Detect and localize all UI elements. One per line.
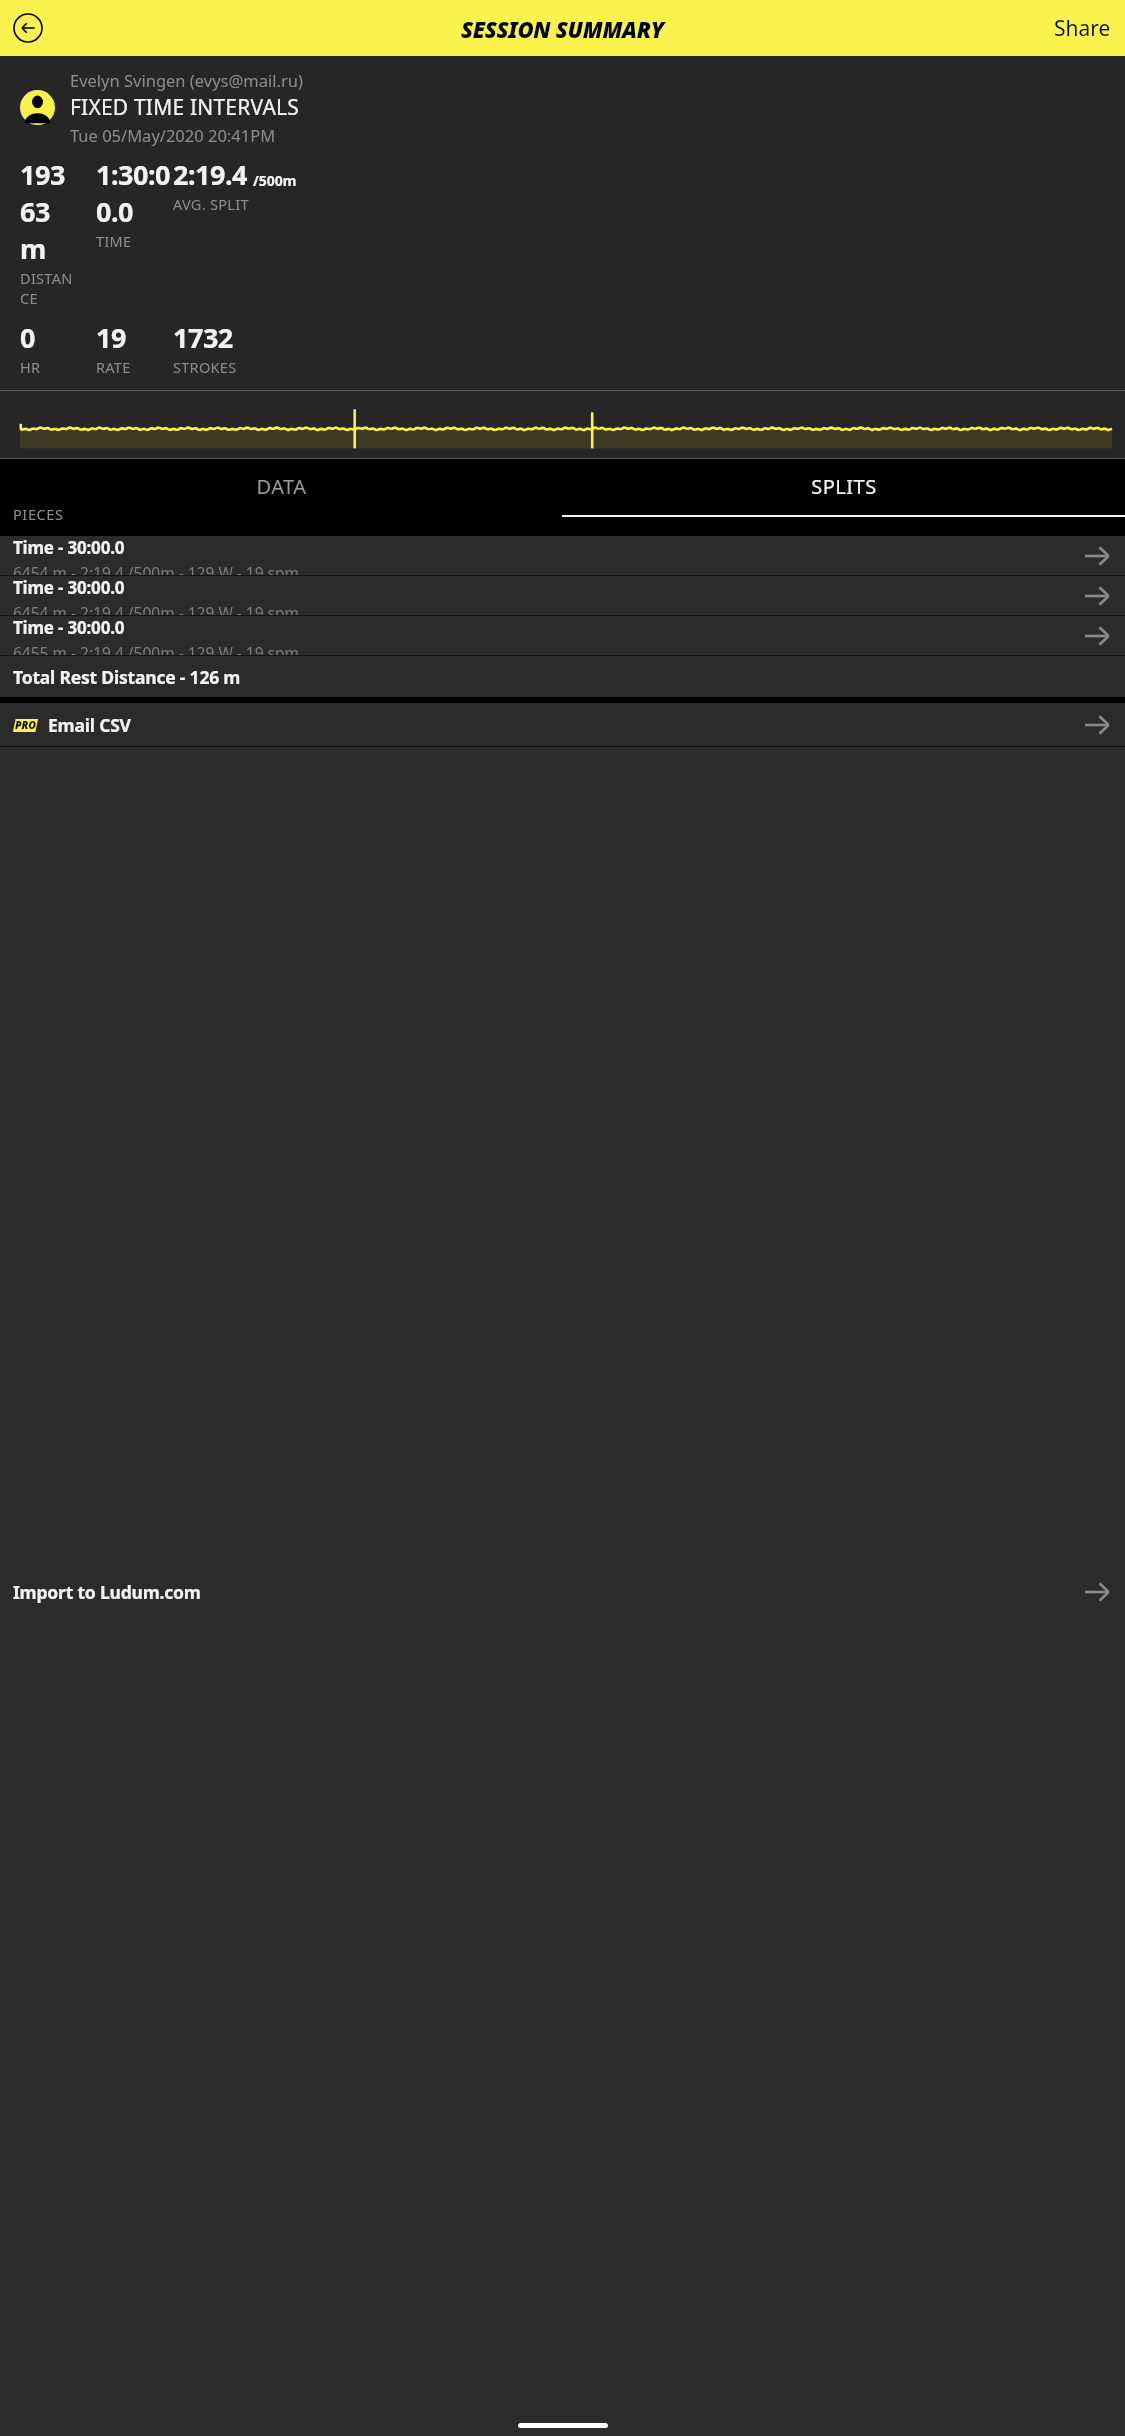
button[interactable]: DATA xyxy=(0,459,562,517)
button[interactable]: Time - 30:00.0 xyxy=(0,536,1125,575)
staticText: AVG. SPLIT xyxy=(173,194,249,214)
staticText: 2:19.4 xyxy=(173,156,247,193)
staticText: 1:30:00.0 xyxy=(96,156,173,230)
button[interactable]: Share xyxy=(1040,6,1125,51)
staticText: 19363 m xyxy=(20,156,78,267)
staticText: PIECES xyxy=(13,504,64,524)
staticText: 6455 m - 2:19.4 /500m - 129 W - 19 spm xyxy=(13,642,300,655)
staticText: 6454 m - 2:19.4 /500m - 129 W - 19 spm xyxy=(13,562,300,575)
staticText: RATE xyxy=(96,357,131,377)
button[interactable]: SPLITS xyxy=(562,459,1125,517)
staticText: Email CSV xyxy=(48,713,131,737)
staticText: PRO xyxy=(15,718,37,732)
staticText: TIME xyxy=(96,231,132,251)
staticText: Share xyxy=(1054,14,1111,43)
staticText: SPLITS xyxy=(811,473,877,500)
staticText: /500m xyxy=(253,171,297,190)
staticText: Time - 30:00.0 xyxy=(13,536,125,559)
button[interactable]: Time - 30:00.0 xyxy=(0,576,1125,615)
button[interactable]: Import to Ludum.com xyxy=(0,747,1125,2436)
staticText: HR xyxy=(20,357,41,377)
button[interactable]: Time - 30:00.0 xyxy=(0,616,1125,655)
button[interactable]: Back xyxy=(6,6,50,50)
staticText: DISTANCE xyxy=(20,268,78,308)
staticText: FIXED TIME INTERVALS xyxy=(70,93,299,122)
staticText: Total Rest Distance - 126 m xyxy=(13,665,241,689)
staticText: STROKES xyxy=(173,357,237,377)
button[interactable]: Email CSV xyxy=(0,703,1125,746)
staticText: Tue 05/May/2020 20:41PM xyxy=(70,124,276,146)
staticText: Time - 30:00.0 xyxy=(13,576,125,599)
staticText: 1732 xyxy=(173,319,233,356)
staticText: Time - 30:00.0 xyxy=(13,616,125,639)
staticText: 6454 m - 2:19.4 /500m - 129 W - 19 spm xyxy=(13,602,300,615)
staticText: DATA xyxy=(256,473,307,500)
staticText: 0 xyxy=(20,319,35,356)
staticText: Import to Ludum.com xyxy=(13,1580,201,1604)
staticText: Evelyn Svingen (evys@mail.ru) xyxy=(70,69,303,91)
staticText: 19 xyxy=(96,319,126,356)
staticText: SESSION SUMMARY xyxy=(461,14,664,44)
